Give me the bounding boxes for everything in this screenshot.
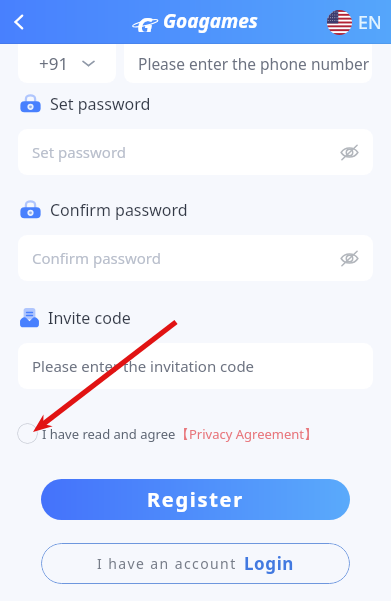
button[interactable]: Confirm password xyxy=(18,235,373,281)
button[interactable]: Register xyxy=(41,479,350,520)
staticText: EN xyxy=(358,10,382,35)
staticText: Goagames xyxy=(163,8,258,34)
button[interactable]: Please enter the invitation code xyxy=(18,343,373,389)
staticText: Confirm password xyxy=(32,248,161,268)
button[interactable]: Agree to privacy agreement xyxy=(17,423,38,444)
staticText: Please enter the phone number xyxy=(138,53,370,74)
staticText: Login xyxy=(244,552,295,575)
button[interactable]: +91 xyxy=(18,44,116,83)
button[interactable]: Set password xyxy=(18,129,373,175)
button[interactable]: Please enter the phone number xyxy=(124,44,372,83)
staticText: I have read and agree xyxy=(42,425,176,443)
staticText: Confirm password xyxy=(50,199,188,221)
button[interactable]: Show password xyxy=(338,247,360,269)
staticText: +91 xyxy=(39,52,69,75)
staticText: Register xyxy=(147,486,244,513)
button[interactable]: I have an account xyxy=(41,543,350,584)
staticText: Set password xyxy=(32,142,127,162)
staticText: I have an account xyxy=(97,554,237,573)
staticText: G xyxy=(137,10,153,32)
staticText: Invite code xyxy=(48,307,131,329)
button[interactable]: 【Privacy Agreement】 xyxy=(176,425,318,443)
button[interactable]: EN xyxy=(326,10,383,35)
button[interactable]: Show password xyxy=(338,141,360,163)
staticText: Please enter the invitation code xyxy=(32,356,255,376)
staticText: Set password xyxy=(50,93,151,115)
button[interactable]: Back xyxy=(0,0,38,44)
